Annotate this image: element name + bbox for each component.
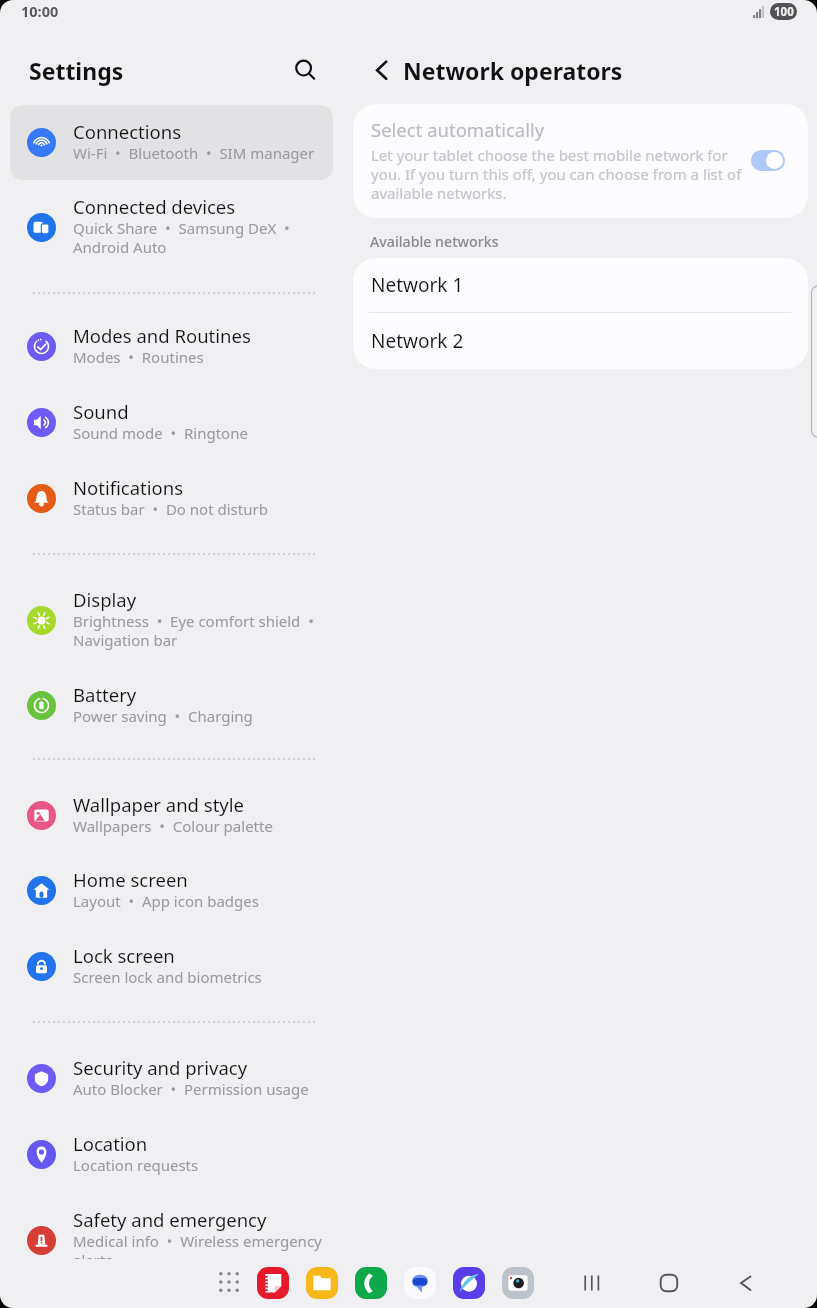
button[interactable]: Phone — [355, 1267, 387, 1299]
button[interactable]: Display — [10, 573, 333, 667]
staticText: Battery — [73, 682, 137, 707]
button[interactable]: Select automatically — [353, 104, 808, 218]
button[interactable]: Apps — [211, 1264, 247, 1300]
button[interactable]: Back — [729, 1266, 763, 1300]
button[interactable]: Messages — [404, 1267, 436, 1299]
staticText: Connections — [73, 119, 182, 144]
button[interactable]: Location — [10, 1117, 333, 1192]
button[interactable]: Home screen — [10, 853, 333, 928]
button[interactable]: Recents — [575, 1266, 609, 1300]
button[interactable]: Wallpaper and style — [10, 778, 333, 853]
staticText: Select automatically — [371, 117, 545, 142]
button[interactable]: Connected devices — [10, 180, 333, 274]
staticText: Connected devices — [73, 194, 236, 219]
button[interactable]: Search — [284, 48, 328, 92]
staticText: Auto Blocker • Permission usage — [73, 1079, 309, 1099]
staticText: Available networks — [370, 232, 499, 251]
staticText: Screen lock and biometrics — [73, 967, 262, 987]
staticText: Wi-Fi • Bluetooth • SIM manager — [73, 143, 315, 163]
staticText: Status bar • Do not disturb — [73, 499, 268, 519]
button[interactable]: Camera — [502, 1267, 534, 1299]
staticText: Display — [73, 587, 137, 612]
staticText: Location — [73, 1131, 148, 1156]
button[interactable]: Connections — [10, 105, 333, 180]
button[interactable]: Select automatically — [751, 150, 785, 171]
staticText: Network operators — [403, 55, 623, 86]
staticText: Layout • App icon badges — [73, 891, 259, 911]
staticText: Lock screen — [73, 943, 175, 968]
staticText: 10:00 — [21, 1, 59, 21]
button[interactable]: My Files — [306, 1267, 338, 1299]
staticText: Home screen — [73, 867, 188, 892]
button[interactable]: Network 2 — [353, 313, 808, 369]
button[interactable]: Lock screen — [10, 929, 333, 1004]
button[interactable]: Sound — [10, 385, 333, 460]
button[interactable]: Battery — [10, 668, 333, 743]
staticText: Brightness • Eye comfort shield • Naviga… — [73, 611, 314, 651]
staticText: Let your tablet choose the best mobile n… — [371, 145, 749, 203]
button[interactable]: Notifications — [10, 461, 333, 536]
staticText: Settings — [29, 55, 124, 86]
button[interactable]: Home — [652, 1266, 686, 1300]
staticText: Sound — [73, 399, 129, 424]
staticText: Modes • Routines — [73, 347, 204, 367]
button[interactable]: Samsung Internet — [453, 1267, 485, 1299]
staticText: Safety and emergency — [73, 1207, 267, 1232]
staticText: Wallpaper and style — [73, 792, 244, 817]
staticText: Network 2 — [371, 328, 464, 354]
staticText: Location requests — [73, 1155, 199, 1175]
staticText: Medical info • Wireless emergency alerts — [73, 1231, 322, 1259]
staticText: Modes and Routines — [73, 323, 251, 348]
staticText: Wallpapers • Colour palette — [73, 816, 273, 836]
staticText: Notifications — [73, 475, 184, 500]
button[interactable]: Samsung Notes — [257, 1267, 289, 1299]
button[interactable]: Back — [362, 49, 404, 91]
staticText: Network 1 — [371, 272, 464, 298]
button[interactable]: Security and privacy — [10, 1041, 333, 1116]
staticText: Sound mode • Ringtone — [73, 423, 248, 443]
button[interactable]: Modes and Routines — [10, 309, 333, 384]
staticText: Power saving • Charging — [73, 706, 253, 726]
staticText: Security and privacy — [73, 1055, 248, 1080]
button[interactable]: Network 1 — [353, 258, 808, 312]
button[interactable]: Safety and emergency — [10, 1193, 333, 1259]
staticText: 100 — [774, 4, 794, 20]
staticText: Quick Share • Samsung DeX • Android Auto — [73, 218, 290, 258]
